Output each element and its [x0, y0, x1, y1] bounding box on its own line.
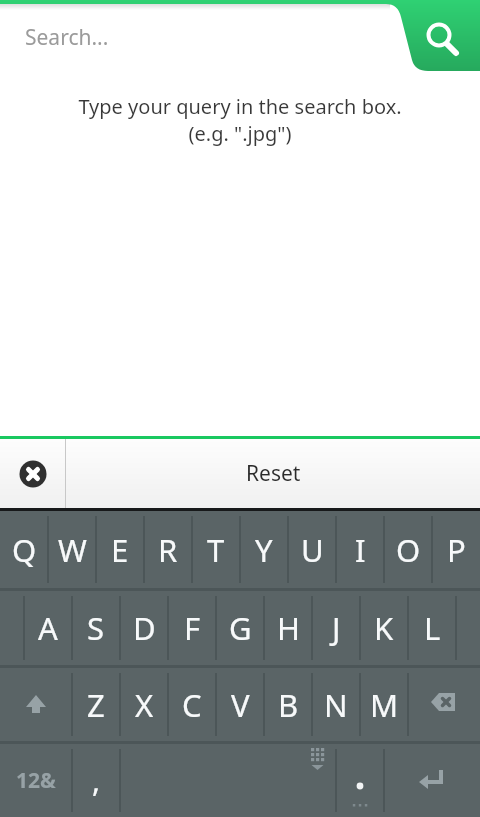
staticText: C — [182, 684, 202, 726]
button[interactable] — [400, 0, 480, 72]
button[interactable]: M — [360, 668, 408, 741]
button[interactable] — [408, 668, 480, 741]
button[interactable] — [0, 439, 65, 508]
button[interactable] — [384, 744, 480, 817]
staticText: 12& — [16, 766, 56, 795]
staticText: A — [38, 607, 58, 649]
staticText: S — [87, 607, 105, 649]
staticText: J — [332, 607, 341, 649]
button[interactable]: F — [168, 591, 216, 665]
button[interactable]: K — [360, 591, 408, 665]
staticText: Reset — [246, 459, 301, 488]
staticText: X — [135, 684, 154, 726]
button[interactable] — [120, 744, 336, 817]
button[interactable]: J — [312, 591, 360, 665]
staticText: T — [207, 529, 225, 571]
staticText: W — [58, 529, 87, 571]
staticText: R — [158, 529, 178, 571]
staticText: E — [111, 529, 129, 571]
button[interactable]: D — [120, 591, 168, 665]
staticText: (e.g. ".jpg") — [0, 120, 480, 147]
button[interactable]: X — [120, 668, 168, 741]
staticText: D — [133, 607, 156, 649]
button[interactable]: T — [192, 511, 240, 588]
staticText: G — [229, 607, 252, 649]
staticText: M — [370, 684, 399, 726]
staticText: N — [324, 684, 348, 726]
button[interactable]: Y — [240, 511, 288, 588]
button[interactable]: H — [264, 591, 312, 665]
button[interactable]: W — [48, 511, 96, 588]
button[interactable]: 12& — [0, 744, 72, 817]
staticText: K — [374, 607, 394, 649]
staticText: B — [278, 684, 299, 726]
button[interactable]: V — [216, 668, 264, 741]
staticText: P — [447, 529, 466, 571]
staticText: Y — [255, 529, 273, 571]
button[interactable]: Reset — [66, 439, 480, 508]
staticText: U — [301, 529, 324, 571]
button[interactable]: L — [408, 591, 456, 665]
button[interactable]: G — [216, 591, 264, 665]
button[interactable]: I — [336, 511, 384, 588]
staticText: Q — [12, 529, 37, 571]
button[interactable]: , — [72, 744, 120, 817]
button[interactable]: E — [96, 511, 144, 588]
button[interactable] — [336, 744, 384, 817]
button[interactable]: Q — [0, 511, 48, 588]
button[interactable]: P — [432, 511, 480, 588]
button[interactable]: N — [312, 668, 360, 741]
button[interactable] — [0, 0, 390, 72]
button[interactable]: O — [384, 511, 432, 588]
staticText: Search... — [25, 23, 109, 52]
staticText: F — [184, 607, 201, 649]
staticText: Type your query in the search box. — [0, 93, 480, 120]
button[interactable]: C — [168, 668, 216, 741]
button[interactable]: U — [288, 511, 336, 588]
button[interactable]: B — [264, 668, 312, 741]
staticText: H — [277, 607, 300, 649]
button[interactable] — [0, 668, 72, 741]
button[interactable]: A — [24, 591, 72, 665]
staticText: Z — [87, 684, 105, 726]
staticText: V — [231, 684, 250, 726]
staticText: I — [355, 529, 366, 571]
staticText: O — [396, 529, 421, 571]
button[interactable]: S — [72, 591, 120, 665]
button[interactable]: Z — [72, 668, 120, 741]
button[interactable]: R — [144, 511, 192, 588]
staticText: , — [92, 760, 101, 801]
staticText: L — [424, 607, 441, 649]
